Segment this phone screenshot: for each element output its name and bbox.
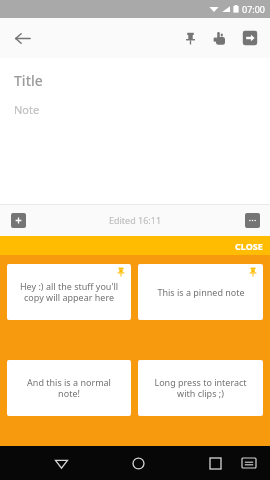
staticText: Title bbox=[14, 71, 43, 90]
button[interactable]: More options bbox=[240, 208, 264, 232]
button[interactable]: And this is a normal note! bbox=[7, 360, 131, 416]
staticText: 07:00 bbox=[242, 3, 266, 15]
button[interactable]: Back bbox=[6, 22, 38, 54]
staticText: This is a pinned note bbox=[157, 286, 245, 298]
staticText: Long press to interact with clips ;) bbox=[147, 376, 254, 400]
button[interactable]: Recent apps bbox=[198, 446, 232, 480]
staticText: Note bbox=[14, 102, 40, 117]
button[interactable]: Add attachment bbox=[6, 208, 30, 232]
button[interactable]: Long press to interact with clips ;) bbox=[138, 360, 263, 416]
button[interactable]: CLOSE bbox=[228, 238, 270, 254]
button[interactable]: Save note bbox=[235, 23, 265, 53]
button[interactable]: Clipboard bbox=[205, 23, 235, 53]
button[interactable]: Keyboard bbox=[232, 446, 266, 480]
button[interactable]: Back bbox=[44, 446, 78, 480]
button[interactable]: Hey :) all the stuff you'll copy will ap… bbox=[7, 264, 131, 320]
button[interactable]: Home bbox=[121, 446, 155, 480]
button[interactable]: Pin note bbox=[175, 23, 205, 53]
staticText: CLOSE bbox=[235, 240, 263, 252]
button[interactable]: This is a pinned note bbox=[138, 264, 263, 320]
staticText: Edited 16:11 bbox=[109, 214, 162, 226]
staticText: And this is a normal note! bbox=[16, 376, 122, 400]
staticText: Hey :) all the stuff you'll copy will ap… bbox=[16, 280, 122, 304]
